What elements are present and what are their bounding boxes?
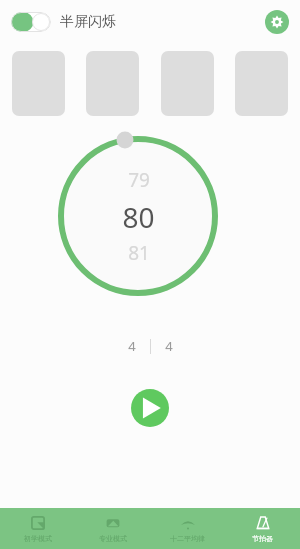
button[interactable]: 专业模式 bbox=[75, 508, 150, 549]
button[interactable]: 4 bbox=[114, 333, 150, 359]
staticText: 半屏闪烁 bbox=[60, 13, 116, 31]
button[interactable]: 十二平均律 bbox=[150, 508, 225, 549]
button[interactable]: Beat slot 1 bbox=[12, 51, 65, 116]
button[interactable]: Beat slot 2 bbox=[86, 51, 139, 116]
staticText: 专业模式 bbox=[99, 534, 127, 543]
staticText: 81 bbox=[128, 240, 150, 266]
button[interactable]: Play bbox=[131, 389, 169, 427]
staticText: 80 bbox=[122, 198, 155, 236]
staticText: 4 bbox=[165, 337, 173, 355]
staticText: 十二平均律 bbox=[170, 534, 205, 543]
button[interactable]: 节拍器 bbox=[225, 508, 300, 549]
button[interactable]: Settings bbox=[265, 10, 289, 34]
button[interactable]: 初学模式 bbox=[0, 508, 75, 549]
button[interactable]: Tempo dial 80 BPM bbox=[53, 131, 223, 301]
staticText: 节拍器 bbox=[252, 534, 273, 543]
button[interactable]: 4 bbox=[151, 333, 187, 359]
button[interactable]: 半屏闪烁 开关 bbox=[11, 12, 51, 32]
staticText: 79 bbox=[128, 167, 150, 193]
button[interactable]: Beat slot 3 bbox=[161, 51, 214, 116]
staticText: 初学模式 bbox=[24, 534, 52, 543]
button[interactable]: Beat slot 4 bbox=[235, 51, 288, 116]
staticText: 4 bbox=[128, 337, 136, 355]
